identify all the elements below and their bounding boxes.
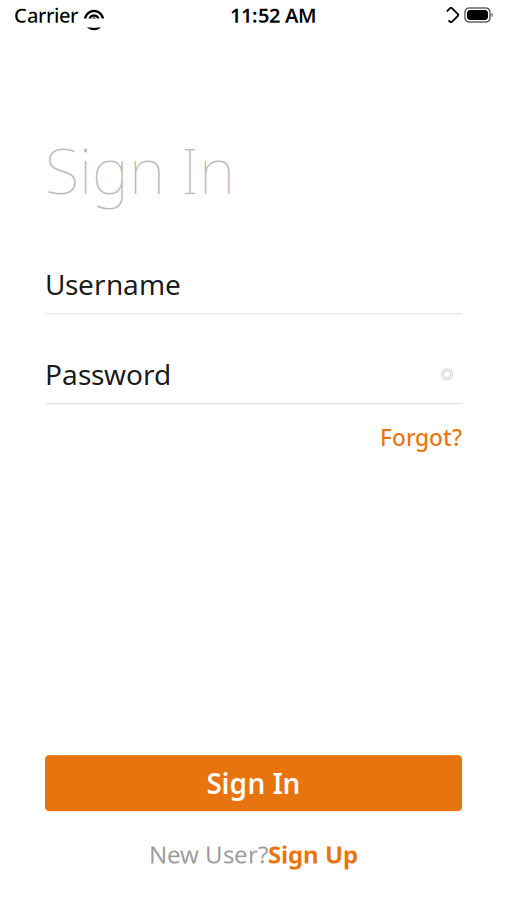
button[interactable]: New User? <box>129 830 378 878</box>
staticText: Password <box>45 356 171 393</box>
staticText: Username <box>45 266 181 303</box>
staticText: 11:52 AM <box>230 2 317 28</box>
staticText: Sign Up <box>268 838 358 870</box>
staticText: Sign In <box>45 128 235 211</box>
staticText: New User? <box>149 838 268 870</box>
staticText: Carrier <box>14 2 78 28</box>
button[interactable]: Show password <box>432 359 462 389</box>
staticText: Sign In <box>206 764 300 802</box>
staticText: Forgot? <box>380 422 462 452</box>
button[interactable]: Forgot? <box>380 422 462 452</box>
button[interactable]: Sign In <box>45 755 462 811</box>
